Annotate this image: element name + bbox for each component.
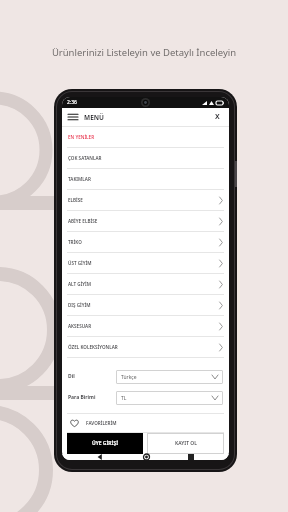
staticText: ELBİSE <box>68 197 83 203</box>
button[interactable]: TAKIMLAR <box>62 169 229 189</box>
staticText: ALT GİYİM <box>68 281 92 287</box>
staticText: 2:36 <box>67 99 77 106</box>
staticText: FAVORİLERİM <box>86 420 117 426</box>
staticText: EN YENİLER <box>68 134 95 140</box>
button[interactable]: Back <box>93 454 107 460</box>
button[interactable]: ELBİSE <box>62 190 229 210</box>
button[interactable]: Menu <box>62 108 229 126</box>
button[interactable]: FAVORİLERİM <box>62 414 229 432</box>
staticText: TL <box>121 395 127 402</box>
button[interactable]: DIŞ GİYİM <box>62 295 229 315</box>
button[interactable]: KAYIT OL <box>147 433 224 454</box>
staticText: ÜST GİYİM <box>68 260 92 266</box>
staticText: Türkçe <box>121 374 137 381</box>
staticText: TRİKO <box>68 239 82 245</box>
staticText: Ürünlerinizi Listeleyin ve Detaylı İncel… <box>0 46 288 59</box>
button[interactable]: ALT GİYİM <box>62 274 229 294</box>
staticText: ÜYE GİRİŞİ <box>92 440 118 447</box>
button[interactable]: Home <box>139 454 153 460</box>
button[interactable]: Türkçe <box>116 370 223 384</box>
button[interactable]: ABİYE ELBİSE <box>62 211 229 231</box>
button[interactable]: TRİKO <box>62 232 229 252</box>
staticText: ÇOK SATANLAR <box>68 155 102 161</box>
staticText: X <box>215 112 220 122</box>
button[interactable]: AKSESUAR <box>62 316 229 336</box>
button[interactable]: ÜST GİYİM <box>62 253 229 273</box>
staticText: Dil <box>68 373 116 380</box>
button[interactable]: ÜYE GİRİŞİ <box>67 433 143 454</box>
staticText: DIŞ GİYİM <box>68 302 91 308</box>
button[interactable]: Recents <box>184 454 198 460</box>
staticText: ABİYE ELBİSE <box>68 218 98 224</box>
staticText: TAKIMLAR <box>68 176 91 182</box>
staticText: ÖZEL KOLEKSİYONLAR <box>68 344 118 350</box>
staticText: AKSESUAR <box>68 323 92 329</box>
staticText: KAYIT OL <box>175 440 197 447</box>
button[interactable]: ÇOK SATANLAR <box>62 148 229 168</box>
other: Menu <box>68 113 78 121</box>
button[interactable]: Close <box>211 111 223 123</box>
button[interactable]: EN YENİLER <box>62 127 229 147</box>
staticText: MENÜ <box>84 113 104 122</box>
button[interactable]: ÖZEL KOLEKSİYONLAR <box>62 337 229 357</box>
button[interactable]: TL <box>116 391 223 405</box>
staticText: Para Birimi <box>68 394 116 401</box>
